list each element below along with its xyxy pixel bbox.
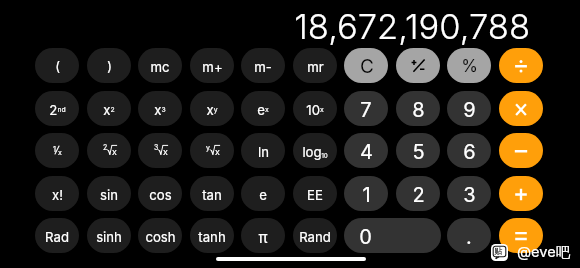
button[interactable]: x! bbox=[35, 176, 79, 211]
staticText: log10 bbox=[302, 144, 328, 160]
staticText: x bbox=[58, 148, 62, 156]
button[interactable]: . bbox=[447, 218, 491, 253]
staticText: x3 bbox=[154, 102, 166, 118]
button[interactable]: x2 bbox=[87, 91, 131, 126]
staticText: mc bbox=[150, 59, 170, 75]
staticText: ex bbox=[257, 102, 269, 118]
button[interactable]: Rand bbox=[293, 218, 337, 253]
staticText: 0 bbox=[359, 225, 372, 249]
staticText: x bbox=[163, 146, 168, 157]
staticText: @eve吧 bbox=[517, 243, 571, 261]
staticText: x bbox=[215, 146, 220, 157]
staticText: 9 bbox=[463, 98, 476, 122]
button[interactable]: sin bbox=[87, 176, 131, 211]
button[interactable]: one over x bbox=[35, 133, 79, 168]
staticText: 5 bbox=[412, 140, 425, 164]
staticText: tanh bbox=[198, 229, 226, 245]
button[interactable]: root 3 of x bbox=[138, 133, 182, 168]
button[interactable]: Multiply bbox=[499, 91, 543, 126]
staticText: e bbox=[259, 187, 267, 203]
staticText: 4 bbox=[360, 140, 373, 164]
staticText: Rad bbox=[45, 229, 69, 245]
button[interactable]: π bbox=[241, 218, 285, 253]
button[interactable]: C bbox=[344, 48, 388, 83]
button[interactable]: Equals bbox=[499, 218, 543, 253]
staticText: xy bbox=[206, 102, 218, 118]
staticText: cosh bbox=[145, 229, 176, 245]
button[interactable]: tanh bbox=[190, 218, 234, 253]
button[interactable]: m+ bbox=[190, 48, 234, 83]
button[interactable]: root 2 of x bbox=[87, 133, 131, 168]
button[interactable]: Divide bbox=[499, 48, 543, 83]
button[interactable]: e bbox=[241, 176, 285, 211]
staticText: 18,672,190,788 bbox=[0, 6, 530, 48]
button[interactable]: Minus bbox=[499, 133, 543, 168]
button[interactable]: ) bbox=[87, 48, 131, 83]
button[interactable]: x3 bbox=[138, 91, 182, 126]
button[interactable]: Toggle sign bbox=[396, 48, 440, 83]
staticText: sinh bbox=[96, 229, 122, 245]
staticText: 8 bbox=[412, 98, 425, 122]
staticText: 10x bbox=[306, 102, 324, 118]
staticText: 2nd bbox=[49, 102, 66, 118]
button[interactable]: Plus bbox=[499, 176, 543, 211]
staticText: C bbox=[360, 55, 374, 78]
button[interactable]: 8 bbox=[396, 91, 440, 126]
staticText: tan bbox=[202, 187, 222, 203]
staticText: 2 bbox=[103, 143, 108, 151]
staticText: Rand bbox=[299, 229, 331, 245]
staticText: 7 bbox=[360, 98, 372, 122]
button[interactable]: 2nd bbox=[35, 91, 79, 126]
button[interactable]: ( bbox=[35, 48, 79, 83]
button[interactable]: 0 bbox=[344, 218, 441, 253]
button[interactable]: mc bbox=[138, 48, 182, 83]
button[interactable]: 6 bbox=[447, 133, 491, 168]
staticText: y bbox=[206, 143, 210, 151]
staticText: m+ bbox=[202, 59, 223, 75]
button[interactable]: 1 bbox=[344, 176, 388, 211]
staticText: x2 bbox=[103, 102, 115, 118]
button[interactable]: EE bbox=[293, 176, 337, 211]
staticText: π bbox=[258, 228, 268, 246]
button[interactable]: sinh bbox=[87, 218, 131, 253]
staticText: % bbox=[461, 56, 478, 77]
staticText: x! bbox=[52, 187, 63, 203]
button[interactable]: 7 bbox=[344, 91, 388, 126]
staticText: m- bbox=[254, 59, 272, 75]
button[interactable]: cosh bbox=[138, 218, 182, 253]
staticText: 1 bbox=[362, 183, 371, 207]
staticText: 3 bbox=[154, 143, 159, 151]
button[interactable]: 3 bbox=[447, 176, 491, 211]
staticText: EE bbox=[307, 187, 323, 203]
staticText: ) bbox=[107, 58, 112, 74]
staticText: 3 bbox=[463, 183, 476, 207]
staticText: 1 bbox=[53, 145, 57, 154]
staticText: . bbox=[466, 225, 472, 249]
staticText: 6 bbox=[463, 140, 476, 164]
button[interactable]: mr bbox=[293, 48, 337, 83]
button[interactable]: ex bbox=[241, 91, 285, 126]
staticText: 2 bbox=[412, 183, 425, 207]
staticText: mr bbox=[307, 59, 324, 75]
staticText: ln bbox=[258, 144, 269, 160]
button[interactable]: 10x bbox=[293, 91, 337, 126]
staticText: x bbox=[112, 146, 117, 157]
button[interactable]: tan bbox=[190, 176, 234, 211]
button[interactable]: Rad bbox=[35, 218, 79, 253]
button[interactable]: log10 bbox=[293, 133, 337, 168]
staticText: sin bbox=[100, 187, 118, 203]
staticText: ( bbox=[55, 58, 60, 74]
staticText: 贴 bbox=[494, 246, 502, 256]
button[interactable]: cos bbox=[138, 176, 182, 211]
button[interactable]: root y of x bbox=[190, 133, 234, 168]
staticText: cos bbox=[149, 187, 172, 203]
button[interactable]: 9 bbox=[447, 91, 491, 126]
button[interactable]: 5 bbox=[396, 133, 440, 168]
button[interactable]: % bbox=[447, 48, 491, 83]
button[interactable]: ln bbox=[241, 133, 285, 168]
button[interactable]: m- bbox=[241, 48, 285, 83]
button[interactable]: xy bbox=[190, 91, 234, 126]
button[interactable]: 4 bbox=[344, 133, 388, 168]
button[interactable]: 2 bbox=[396, 176, 440, 211]
